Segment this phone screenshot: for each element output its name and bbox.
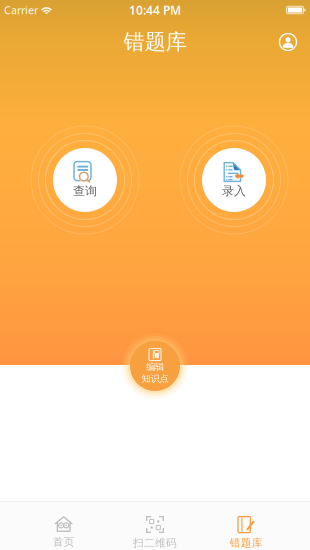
button[interactable]: 扫二维码 — [109, 502, 201, 550]
staticText: 首页 — [53, 535, 75, 549]
button[interactable]: 首页 — [18, 502, 109, 550]
button[interactable]: 错题库 — [201, 502, 292, 550]
button[interactable]: 录入 — [180, 126, 288, 234]
staticText: 扫二维码 — [133, 536, 177, 550]
staticText: 错题库 — [123, 29, 186, 55]
staticText: 录入 — [222, 184, 246, 198]
button[interactable]: 查询 — [31, 126, 139, 234]
staticText: 知识点 — [141, 373, 168, 384]
staticText: 编辑 — [146, 361, 164, 372]
staticText: 错题库 — [230, 536, 263, 550]
staticText: Carrier — [4, 3, 38, 17]
button[interactable]: 编辑 — [122, 333, 188, 399]
staticText: 10:44 PM — [129, 2, 181, 18]
button[interactable]: Account — [266, 20, 310, 64]
staticText: 查询 — [73, 184, 97, 198]
